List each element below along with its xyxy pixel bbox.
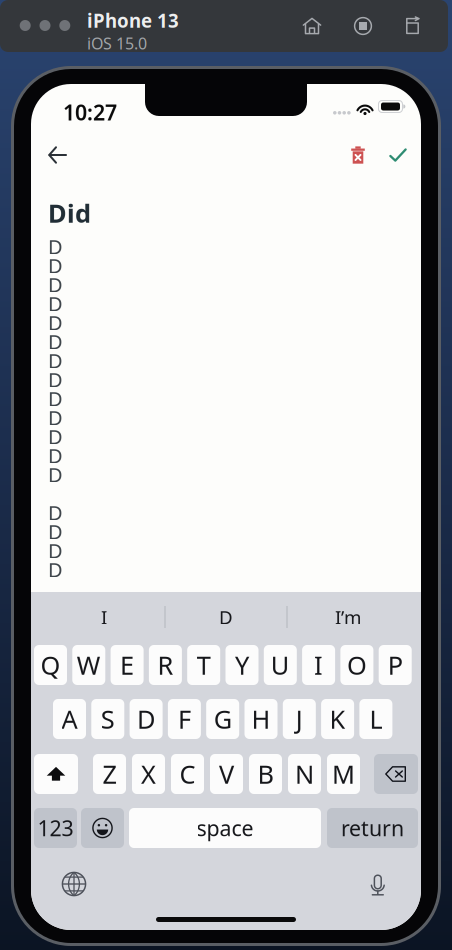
staticText: D [219,605,233,629]
staticText: I’m [335,605,361,629]
button[interactable]: E [111,645,144,685]
button[interactable]: D [165,596,287,638]
button[interactable]: V [210,754,243,794]
staticText: D [48,347,63,374]
staticText: D [48,556,63,583]
button[interactable]: Delete note [343,140,373,170]
staticText: 10:27 [63,98,117,126]
button[interactable]: J [283,699,316,739]
staticText: H [251,702,270,736]
staticText: iOS 15.0 [87,33,147,54]
button[interactable]: H [244,699,277,739]
button[interactable]: Emoji [81,808,124,848]
staticText: M [332,757,355,791]
button[interactable]: C [171,754,204,794]
staticText: B [257,757,273,791]
button[interactable]: Done [383,140,413,170]
button[interactable]: I [302,645,335,685]
staticText: D [48,442,63,469]
button[interactable]: M [327,754,360,794]
staticText: Q [40,648,60,682]
button[interactable]: P [379,645,412,685]
button[interactable]: Switch keyboard [55,865,93,903]
button[interactable]: Z [93,754,126,794]
staticText: D [48,423,63,450]
staticText: Did [48,196,91,230]
button[interactable]: X [132,754,165,794]
staticText: A [61,702,77,736]
staticText: I [101,605,107,629]
button[interactable]: K [321,699,354,739]
staticText: D [48,404,63,431]
button[interactable]: B [249,754,282,794]
button[interactable]: S [91,699,124,739]
button[interactable]: Dictate [359,866,397,904]
button[interactable]: T [187,645,220,685]
staticText: D [48,290,63,317]
staticText: F [178,702,191,736]
button[interactable]: Q [34,645,67,685]
button[interactable]: N [288,754,321,794]
button[interactable]: Rotate [400,12,428,40]
staticText: D [48,271,63,298]
staticText: S [101,702,115,736]
staticText: Z [102,757,116,791]
staticText: D [48,252,63,279]
staticText: return [341,814,404,842]
button[interactable]: Y [225,645,258,685]
button[interactable]: A [53,699,86,739]
staticText: U [271,648,290,682]
staticText: O [347,648,367,682]
button[interactable]: space [129,808,321,848]
staticText: X [141,757,156,791]
staticText: space [196,814,253,842]
button[interactable]: Back [42,140,74,170]
button[interactable]: L [359,699,392,739]
button[interactable]: Home [298,12,326,40]
staticText: D [48,461,63,488]
staticText: D [48,499,63,526]
button[interactable]: I’m [287,596,409,638]
staticText: J [296,702,303,736]
button[interactable]: return [327,808,418,848]
staticText: D [48,233,63,260]
staticText: K [330,702,346,736]
button[interactable]: I [43,596,165,638]
staticText: L [369,702,382,736]
staticText: iPhone 13 [87,8,179,33]
staticText: W [77,648,101,682]
staticText: N [295,757,314,791]
staticText: D [48,366,63,393]
staticText: G [214,702,232,736]
button[interactable]: U [264,645,297,685]
button[interactable]: G [206,699,239,739]
button[interactable]: F [168,699,201,739]
staticText: Y [235,648,249,682]
button[interactable]: 123 [34,808,77,848]
staticText: D [48,328,63,355]
button[interactable]: Shift [34,754,78,794]
staticText: 123 [37,814,73,842]
staticText: E [120,648,134,682]
staticText: T [197,648,211,682]
staticText: R [157,648,173,682]
button[interactable]: Delete [374,754,418,794]
staticText: D [137,702,155,736]
staticText: C [179,757,195,791]
button[interactable]: R [149,645,182,685]
button[interactable]: O [340,645,373,685]
staticText: D [48,385,63,412]
button[interactable]: D [130,699,163,739]
staticText: D [48,309,63,336]
button[interactable]: Record screen [349,12,377,40]
staticText: D [48,537,63,564]
staticText: V [219,757,234,791]
button[interactable]: W [72,645,105,685]
staticText: I [314,648,323,682]
staticText: P [388,648,403,682]
staticText: D [48,518,63,545]
